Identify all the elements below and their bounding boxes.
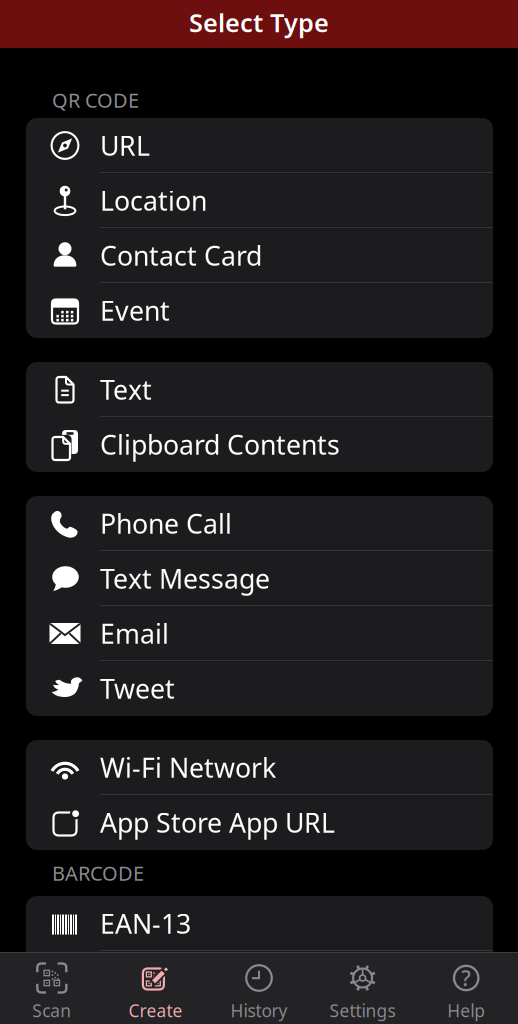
button[interactable]: Scan (0, 953, 104, 1022)
button[interactable]: Phone Call (26, 496, 493, 551)
staticText: EAN-13 (100, 906, 191, 941)
staticText: URL (100, 128, 150, 163)
button[interactable]: Contact Card (26, 228, 493, 283)
staticText: Phone Call (100, 506, 232, 541)
staticText: App Store App URL (100, 805, 335, 840)
button[interactable]: Settings (311, 953, 414, 1022)
staticText: Contact Card (100, 238, 262, 273)
staticText: BARCODE (52, 860, 144, 886)
staticText: Wi-Fi Network (100, 750, 276, 785)
button[interactable]: Location (26, 173, 493, 228)
staticText: Text Message (100, 561, 270, 596)
button[interactable]: Text (26, 362, 493, 417)
button[interactable]: Text Message (26, 551, 493, 606)
button[interactable]: Clipboard Contents (26, 417, 493, 472)
staticText: Event (100, 293, 170, 328)
staticText: Clipboard Contents (100, 427, 340, 462)
button[interactable]: Email (26, 606, 493, 661)
button[interactable]: App Store App URL (26, 795, 493, 850)
staticText: Location (100, 183, 207, 218)
staticText: Email (100, 616, 169, 651)
staticText: Scan (32, 999, 71, 1022)
button[interactable]: URL (26, 118, 493, 173)
button[interactable]: Create (104, 953, 207, 1022)
button[interactable]: ? (414, 953, 518, 1022)
staticText: Help (447, 999, 485, 1022)
button[interactable]: History (207, 953, 311, 1022)
staticText: Select Type (189, 6, 329, 39)
staticText: Create (128, 999, 182, 1022)
staticText: Settings (330, 999, 396, 1022)
button[interactable]: Wi-Fi Network (26, 740, 493, 795)
button[interactable]: Event (26, 283, 493, 338)
staticText: Text (100, 372, 152, 407)
staticText: QR CODE (52, 87, 139, 113)
staticText: ? (461, 964, 471, 992)
staticText: Tweet (100, 671, 175, 706)
staticText: History (230, 999, 287, 1022)
button[interactable]: Tweet (26, 661, 493, 716)
button[interactable]: EAN-13 (26, 896, 493, 951)
